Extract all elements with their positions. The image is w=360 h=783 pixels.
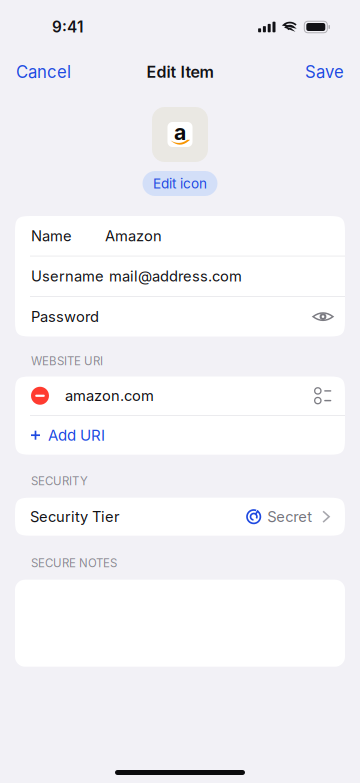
staticText: Username: [31, 267, 104, 285]
staticText: Name: [31, 227, 72, 245]
staticText: Edit icon: [153, 175, 207, 192]
staticText: SECURE NOTES: [31, 556, 117, 570]
staticText: Cancel: [16, 62, 71, 82]
button[interactable]: Security Tier: [0, 498, 360, 536]
staticText: Save: [305, 62, 344, 82]
staticText: Secret: [267, 508, 312, 525]
button[interactable]: Edit icon: [142, 171, 217, 196]
staticText: Security Tier: [30, 508, 120, 525]
staticText: a: [174, 119, 186, 145]
staticText: amazon.com: [65, 387, 154, 405]
staticText: WEBSITE URI: [31, 354, 103, 368]
staticText: mail@address.com: [109, 267, 242, 285]
staticText: SECURITY: [31, 474, 88, 488]
staticText: Edit Item: [146, 62, 213, 82]
staticText: 9:41: [52, 18, 83, 36]
button[interactable]: Cancel: [10, 54, 77, 90]
button[interactable]: URI match options: [312, 385, 334, 407]
staticText: Add URI: [48, 426, 105, 444]
button[interactable]: Add URI: [15, 416, 345, 455]
button[interactable]: Show password: [311, 305, 335, 329]
staticText: Password: [31, 308, 99, 325]
button[interactable]: Remove URI: [27, 383, 53, 409]
button[interactable]: Save: [299, 54, 350, 90]
staticText: Amazon: [105, 227, 162, 245]
